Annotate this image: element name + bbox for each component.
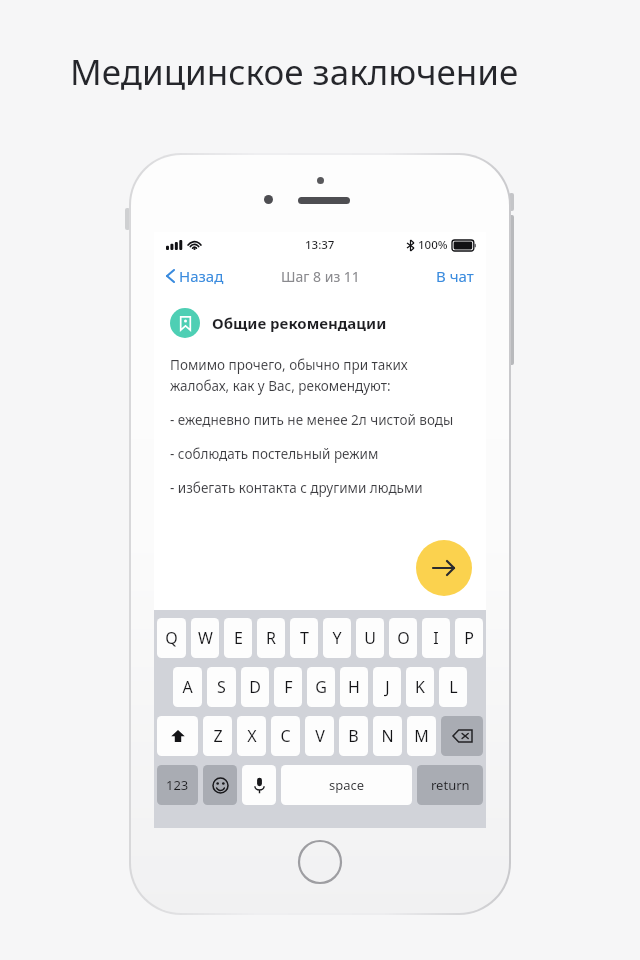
button[interactable]: 123 [157, 765, 198, 805]
button[interactable]: R [257, 618, 285, 658]
staticText: H [348, 676, 360, 698]
button[interactable]: Dictate [242, 765, 276, 805]
staticText: O [397, 627, 410, 649]
staticText: M [414, 725, 429, 747]
button[interactable]: Далее [416, 540, 472, 596]
button[interactable]: I [422, 618, 450, 658]
staticText: J [385, 676, 390, 698]
staticText: A [182, 676, 193, 698]
staticText: F [284, 676, 293, 698]
button[interactable]: Y [323, 618, 351, 658]
button[interactable]: H [340, 667, 368, 707]
staticText: 123 [166, 776, 189, 794]
staticText: - соблюдать постельный режим [170, 445, 379, 463]
button[interactable]: S [207, 667, 236, 707]
staticText: Общие рекомендации [212, 313, 387, 333]
button[interactable]: G [307, 667, 335, 707]
button[interactable]: E [224, 618, 252, 658]
staticText: Помимо прочего, обычно при таких жалобах… [170, 356, 470, 395]
button[interactable]: C [271, 716, 300, 756]
button[interactable]: Emoji [203, 765, 237, 805]
staticText: X [247, 725, 257, 747]
staticText: C [280, 725, 291, 747]
button[interactable]: D [241, 667, 269, 707]
button[interactable]: U [356, 618, 384, 658]
button[interactable]: W [191, 618, 219, 658]
staticText: G [315, 676, 327, 698]
staticText: B [348, 725, 359, 747]
staticText: Шаг 8 из 11 [281, 267, 360, 286]
staticText: 100% [418, 237, 448, 253]
staticText: K [415, 676, 425, 698]
staticText: T [300, 627, 309, 649]
staticText: Z [213, 725, 223, 747]
staticText: Назад [179, 266, 224, 286]
button[interactable]: V [305, 716, 334, 756]
staticText: I [433, 627, 439, 649]
staticText: L [449, 676, 458, 698]
button[interactable]: L [439, 667, 467, 707]
button[interactable]: B [339, 716, 368, 756]
staticText: - ежедневно пить не менее 2л чистой воды [170, 411, 454, 429]
button[interactable]: Назад [162, 263, 228, 289]
button[interactable]: K [406, 667, 434, 707]
staticText: Q [165, 627, 178, 649]
button[interactable]: T [290, 618, 318, 658]
staticText: R [266, 627, 276, 649]
staticText: return [431, 776, 470, 794]
button[interactable]: Q [157, 618, 186, 658]
button[interactable]: Shift [157, 716, 198, 756]
button[interactable]: В чат [432, 263, 478, 289]
button[interactable]: X [237, 716, 266, 756]
button[interactable]: J [373, 667, 401, 707]
button[interactable]: return [417, 765, 483, 805]
staticText: Y [332, 627, 342, 649]
button[interactable]: Backspace [441, 716, 483, 756]
staticText: U [364, 627, 376, 649]
button[interactable]: M [407, 716, 436, 756]
button[interactable]: P [455, 618, 483, 658]
button[interactable]: O [389, 618, 417, 658]
button[interactable]: A [173, 667, 202, 707]
staticText: Медицинское заключение [70, 48, 519, 96]
staticText: 13:37 [305, 237, 335, 253]
button[interactable]: N [373, 716, 402, 756]
staticText: P [464, 627, 474, 649]
staticText: D [249, 676, 261, 698]
staticText: S [217, 676, 226, 698]
button[interactable]: Z [203, 716, 232, 756]
staticText: - избегать контакта с другими людьми [170, 479, 423, 497]
staticText: E [234, 627, 243, 649]
staticText: W [198, 627, 213, 649]
staticText: N [381, 725, 394, 747]
staticText: V [315, 725, 325, 747]
staticText: space [329, 776, 365, 794]
button[interactable]: F [274, 667, 302, 707]
button[interactable]: space [281, 765, 412, 805]
